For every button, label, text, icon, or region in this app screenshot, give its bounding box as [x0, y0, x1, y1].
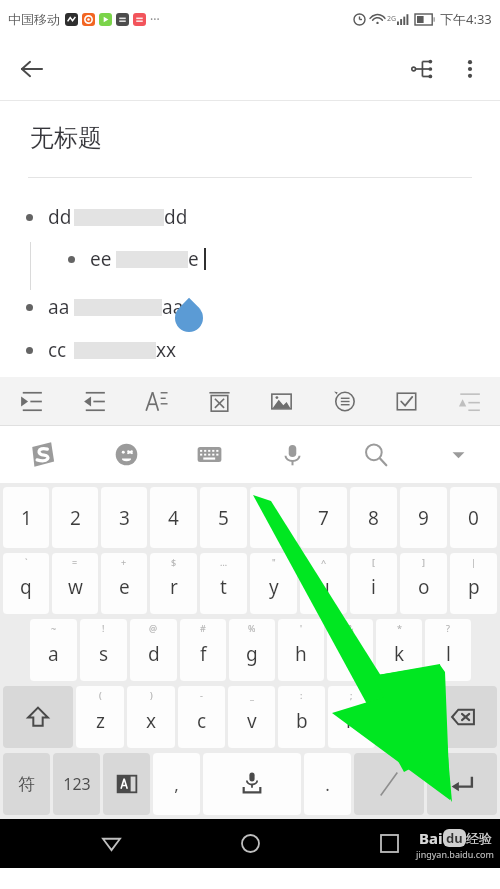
staticText: =: [72, 556, 78, 568]
button[interactable]: Insert image: [260, 380, 302, 422]
staticText: 7: [318, 505, 329, 531]
button[interactable]: -: [178, 686, 225, 748]
button[interactable]: Back: [83, 819, 139, 868]
button[interactable]: 3: [101, 487, 147, 548]
button[interactable]: Checklist: [385, 380, 427, 422]
button[interactable]: More: [417, 426, 500, 483]
staticText: +: [121, 556, 127, 568]
button[interactable]: `: [3, 553, 49, 614]
staticText: du: [446, 829, 463, 847]
staticText: v: [247, 708, 257, 734]
button[interactable]: =: [52, 553, 98, 614]
button[interactable]: #: [180, 619, 226, 681]
button[interactable]: Home: [222, 819, 278, 868]
staticText: Bai: [419, 828, 443, 848]
button[interactable]: Shift: [3, 686, 73, 748]
button[interactable]: &: [327, 619, 373, 681]
staticText: f: [200, 641, 207, 667]
button[interactable]: 123: [53, 753, 100, 815]
button[interactable]: +: [101, 553, 147, 614]
button[interactable]: Enter: [427, 753, 497, 815]
staticText: n: [346, 708, 358, 734]
staticText: b: [296, 708, 308, 734]
button[interactable]: ~: [30, 619, 77, 681]
button[interactable]: Table: [198, 380, 240, 422]
staticText: 4: [168, 505, 179, 531]
button[interactable]: ': [278, 619, 324, 681]
button[interactable]: Share: [398, 45, 446, 93]
button[interactable]: 9: [400, 487, 447, 548]
button[interactable]: Emoji: [84, 426, 168, 483]
button[interactable]: ^: [300, 553, 347, 614]
button[interactable]: Space: [203, 753, 301, 815]
button[interactable]: .: [304, 753, 351, 815]
button[interactable]: [: [350, 553, 397, 614]
button[interactable]: Dictionary: [103, 753, 150, 815]
button[interactable]: 8: [350, 487, 397, 548]
button[interactable]: (: [76, 686, 124, 748]
button[interactable]: Comment: [323, 380, 365, 422]
button[interactable]: Sogou input: [0, 426, 84, 483]
button[interactable]: _: [228, 686, 275, 748]
staticText: ": [272, 556, 276, 568]
staticText: |: [471, 556, 476, 568]
button[interactable]: 2: [52, 487, 98, 548]
staticText: l: [446, 641, 451, 667]
staticText: 2G: [387, 14, 397, 24]
button[interactable]: 6: [250, 487, 297, 548]
staticText: !: [102, 622, 105, 634]
button[interactable]: Backspace: [428, 686, 497, 748]
button[interactable]: 0: [450, 487, 497, 548]
staticText: c: [197, 708, 207, 734]
staticText: 6: [268, 505, 279, 531]
staticText: r: [170, 574, 178, 600]
button[interactable]: …: [200, 553, 247, 614]
staticText: ^: [321, 556, 327, 568]
button[interactable]: Recents: [361, 819, 417, 868]
button[interactable]: !: [80, 619, 127, 681]
button[interactable]: *: [376, 619, 422, 681]
button[interactable]: Back: [8, 45, 56, 93]
staticText: _: [250, 689, 254, 701]
button[interactable]: ?: [425, 619, 471, 681]
button[interactable]: ": [250, 553, 297, 614]
button[interactable]: More options: [446, 45, 494, 93]
button[interactable]: :: [278, 686, 325, 748]
button[interactable]: %: [229, 619, 275, 681]
button[interactable]: @: [130, 619, 177, 681]
button[interactable]: Collapse: [448, 380, 490, 422]
button[interactable]: ;: [328, 686, 375, 748]
button[interactable]: Voice input: [251, 426, 334, 483]
button[interactable]: Indent: [10, 380, 52, 422]
staticText: 经验: [466, 830, 492, 846]
button[interactable]: Search: [334, 426, 417, 483]
staticText: i: [371, 574, 376, 600]
button[interactable]: Outdent: [73, 380, 115, 422]
button[interactable]: 4: [150, 487, 197, 548]
staticText: ?: [446, 622, 450, 634]
staticText: cc: [48, 337, 67, 363]
staticText: k: [394, 641, 405, 667]
button[interactable]: 1: [3, 487, 49, 548]
button[interactable]: ,: [153, 753, 200, 815]
button[interactable]: 7: [300, 487, 347, 548]
button[interactable]: Chinese English toggle: [354, 753, 424, 815]
staticText: :: [300, 689, 303, 701]
button[interactable]: Text format: [135, 380, 177, 422]
staticText: ···: [150, 11, 160, 27]
staticText: *: [397, 622, 402, 634]
staticText: 符: [18, 774, 35, 795]
staticText: #: [200, 622, 206, 634]
staticText: t: [220, 574, 227, 600]
button[interactable]: 5: [200, 487, 247, 548]
button[interactable]: ]: [400, 553, 447, 614]
button[interactable]: ): [127, 686, 175, 748]
staticText: jingyan.baidu.com: [416, 848, 494, 860]
button[interactable]: /: [378, 686, 425, 748]
button[interactable]: |: [450, 553, 497, 614]
button[interactable]: 符: [3, 753, 50, 815]
button[interactable]: $: [150, 553, 197, 614]
staticText: 123: [63, 773, 91, 795]
button[interactable]: Keyboard layout: [168, 426, 251, 483]
